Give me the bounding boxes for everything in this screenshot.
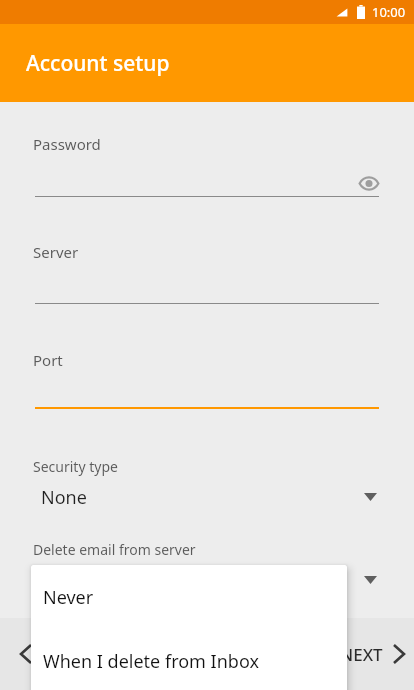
button[interactable]: NEXT — [340, 632, 404, 676]
staticText: When I delete from Inbox — [43, 649, 259, 674]
button[interactable]: None — [30, 480, 380, 514]
staticText: Never — [43, 585, 94, 610]
button[interactable]: When I delete from Inbox — [31, 629, 347, 690]
staticText: Account setup — [26, 49, 170, 78]
staticText: Delete email from server — [33, 540, 196, 559]
button[interactable] — [30, 563, 380, 597]
staticText: NEXT — [340, 643, 383, 666]
staticText: None — [41, 485, 364, 510]
button[interactable]: Previous — [6, 634, 46, 674]
staticText: 10:00 — [372, 3, 406, 21]
staticText: Password — [33, 134, 101, 154]
staticText: Port — [33, 350, 63, 370]
staticText: Security type — [33, 457, 118, 476]
staticText: Server — [33, 242, 79, 262]
button[interactable]: Show password — [355, 169, 383, 197]
button[interactable]: Never — [31, 565, 347, 629]
